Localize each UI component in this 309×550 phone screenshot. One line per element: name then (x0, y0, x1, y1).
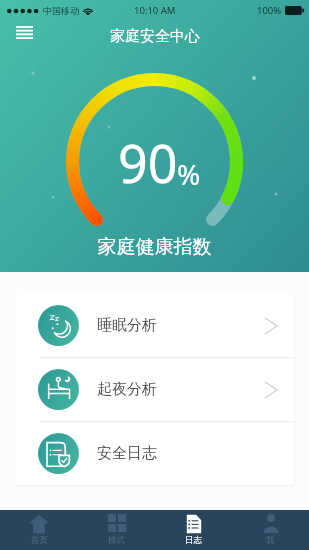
staticText: 100% (257, 4, 282, 17)
staticText: 安全日志 (97, 444, 157, 463)
button[interactable]: Menu (8, 16, 40, 48)
button[interactable]: 日志 (155, 510, 232, 550)
staticText: 模式 (108, 535, 125, 546)
staticText: 中国移动 (43, 5, 79, 16)
staticText: 睡眠分析 (97, 316, 157, 335)
staticText: % (177, 155, 201, 193)
staticText: 首页 (31, 535, 48, 546)
button[interactable]: 安全日志 (15, 422, 294, 485)
staticText: 90 (118, 127, 178, 198)
staticText: 10:10 AM (134, 4, 176, 17)
staticText: 家庭健康指数 (0, 235, 309, 259)
button[interactable]: 睡眠分析 (15, 294, 294, 357)
staticText: 日志 (185, 535, 202, 546)
button[interactable]: 首页 (0, 510, 78, 550)
staticText: 起夜分析 (97, 380, 157, 399)
staticText: 家庭安全中心 (110, 27, 200, 46)
button[interactable]: 起夜分析 (15, 358, 294, 421)
button[interactable]: 模式 (78, 510, 155, 550)
button[interactable]: 我 (232, 510, 309, 550)
staticText: 我 (266, 535, 275, 546)
